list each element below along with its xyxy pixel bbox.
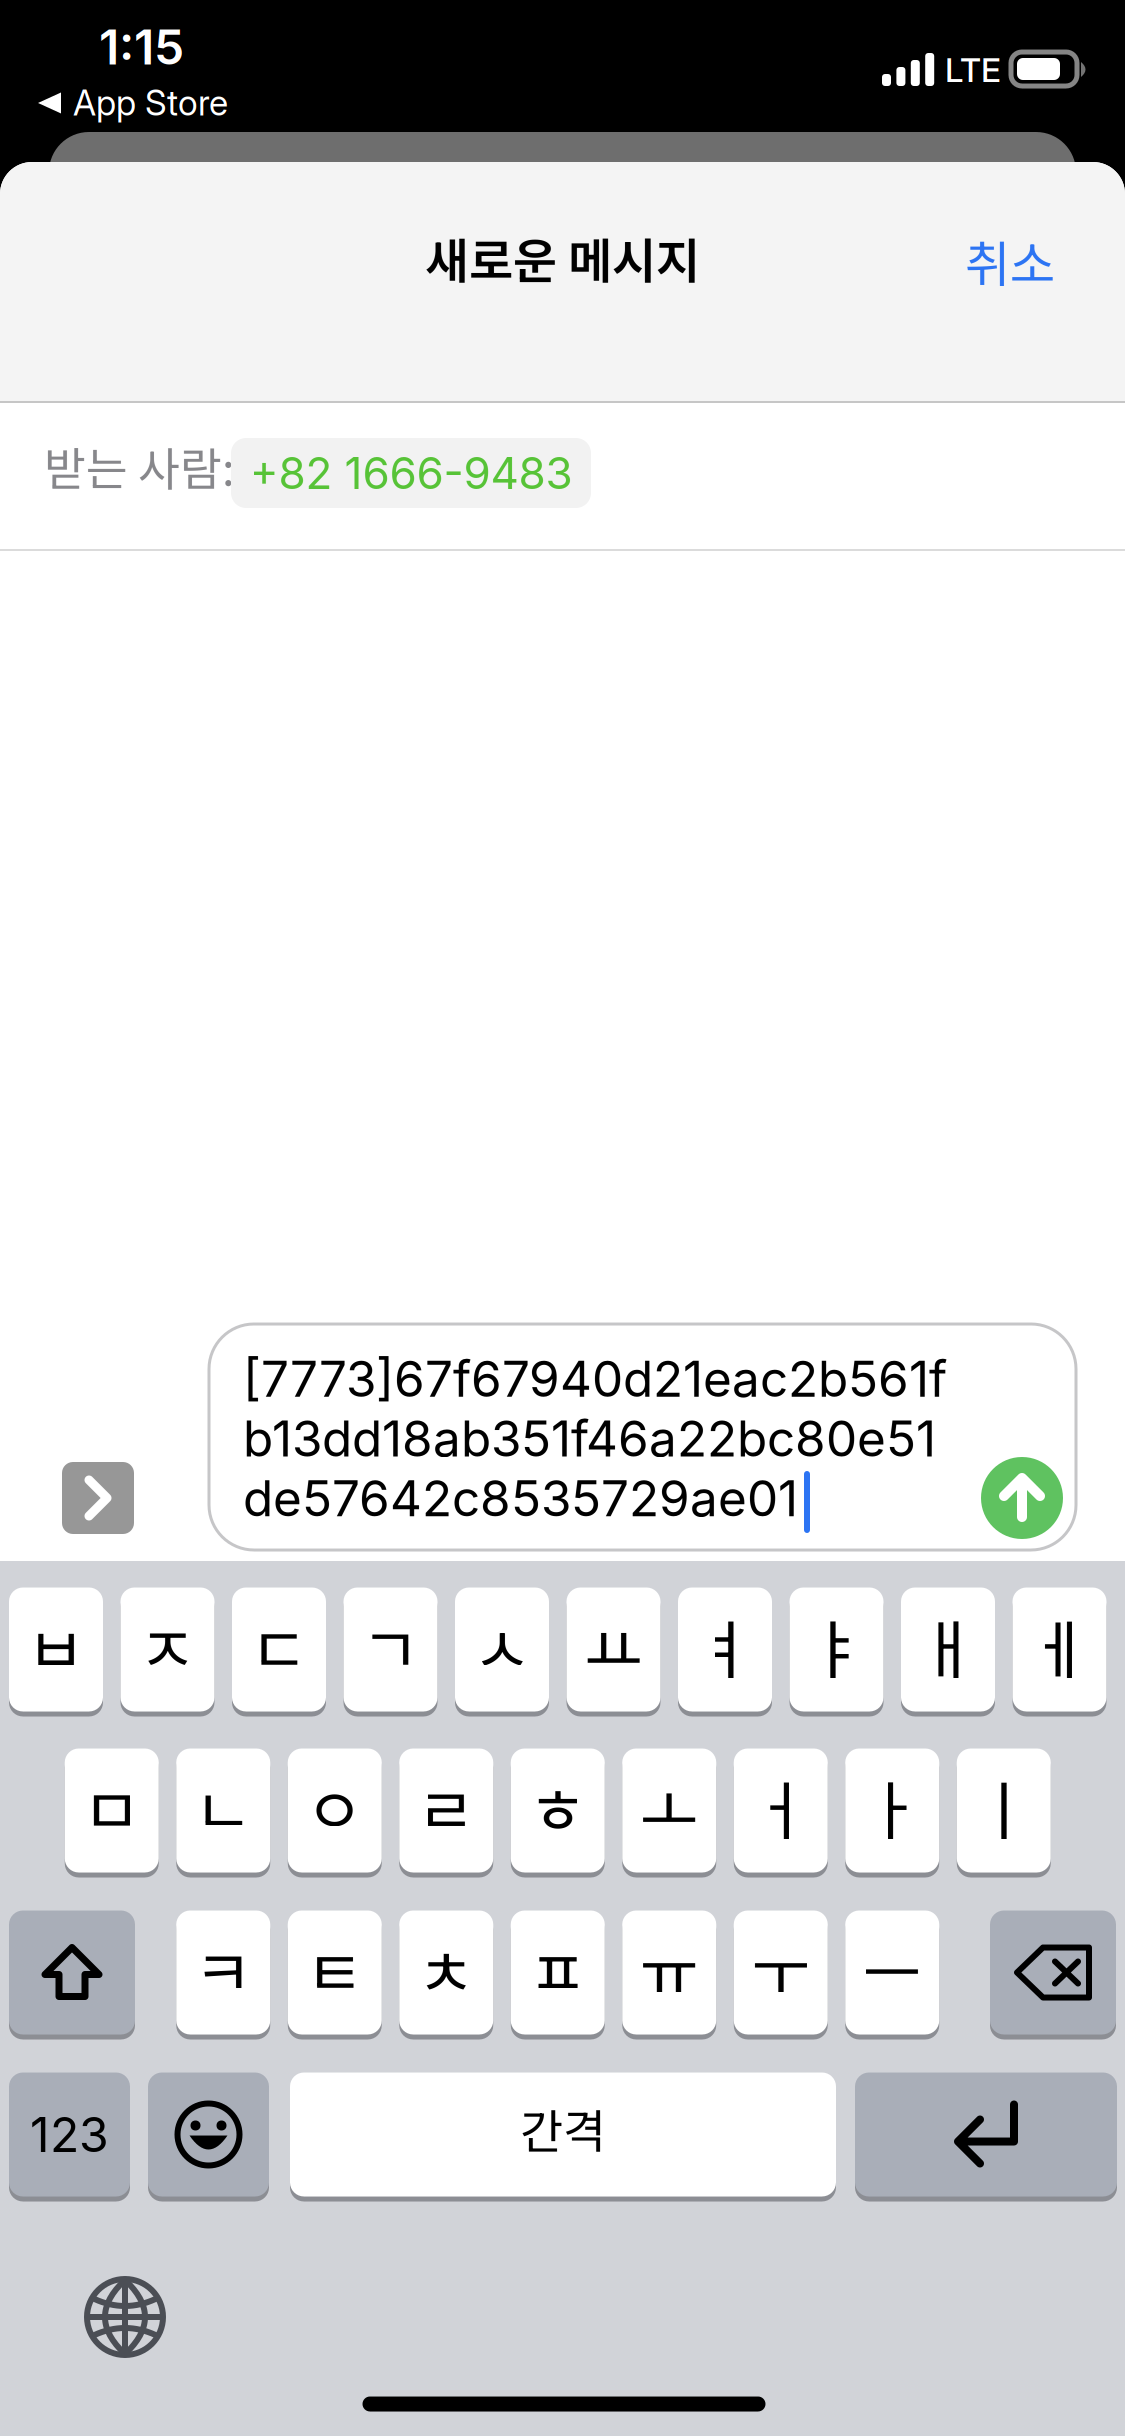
staticText: ㅏ (863, 1760, 922, 1853)
button[interactable]: ㅜ (734, 1908, 828, 2037)
button[interactable]: Delete (990, 1908, 1116, 2037)
button[interactable]: ㅔ (1012, 1585, 1106, 1714)
staticText: ㅗ (640, 1760, 699, 1853)
button[interactable]: ㅗ (622, 1746, 716, 1875)
staticText: ㅔ (1030, 1599, 1089, 1692)
button[interactable]: +82 1666-9483 (231, 438, 591, 508)
staticText: 1:15 (99, 18, 184, 76)
button[interactable]: ㅡ (845, 1908, 939, 2037)
button[interactable]: App drawer (62, 1462, 134, 1534)
staticText: ㅓ (751, 1760, 810, 1853)
button[interactable]: ㅑ (789, 1585, 883, 1714)
button[interactable]: ㅋ (176, 1908, 270, 2037)
staticText: [7773]67f67940d21eac2b561f b13dd18ab351f… (243, 1349, 947, 1528)
button[interactable]: App Store (38, 75, 298, 131)
staticText: 받는 사람: (44, 433, 235, 499)
staticText: ㅡ (863, 1922, 922, 2015)
staticText: ㄴ (194, 1760, 253, 1853)
staticText: ㅣ (974, 1760, 1033, 1853)
button[interactable]: ㅅ (455, 1585, 549, 1714)
staticText: ㅕ (695, 1599, 754, 1692)
staticText: App Store (73, 82, 228, 124)
staticText: LTE (945, 50, 1001, 90)
staticText: ㅅ (472, 1599, 531, 1692)
staticText: 123 (30, 2105, 109, 2164)
staticText: +82 1666-9483 (249, 446, 572, 500)
button[interactable]: ㅎ (511, 1746, 605, 1875)
button[interactable]: ㅏ (845, 1746, 939, 1875)
button[interactable]: ㅁ (65, 1746, 159, 1875)
staticText: ㅂ (26, 1599, 85, 1692)
button[interactable]: Shift (9, 1908, 135, 2037)
staticText: ㅍ (528, 1922, 587, 2015)
button[interactable]: ㅈ (120, 1585, 214, 1714)
staticText: ㅐ (918, 1599, 977, 1692)
staticText: 간격 (520, 2095, 606, 2162)
staticText: 취소 (965, 225, 1055, 296)
staticText: ㄹ (417, 1760, 476, 1853)
button[interactable]: ㄱ (343, 1585, 437, 1714)
button[interactable]: ㄷ (232, 1585, 326, 1714)
staticText: ㅁ (82, 1760, 141, 1853)
staticText: ㄱ (361, 1599, 420, 1692)
button[interactable]: ㅍ (511, 1908, 605, 2037)
button[interactable]: ㅠ (622, 1908, 716, 2037)
staticText: ㅛ (584, 1599, 643, 1692)
staticText: ㅋ (194, 1922, 253, 2015)
staticText: ㅈ (138, 1599, 197, 1692)
staticText: ㅇ (305, 1760, 364, 1853)
button[interactable]: Emoji (148, 2070, 269, 2199)
button[interactable]: ㅊ (399, 1908, 493, 2037)
staticText: ㅠ (640, 1922, 699, 2015)
button[interactable]: ㅇ (288, 1746, 382, 1875)
staticText: ㅌ (305, 1922, 364, 2015)
button[interactable]: ㄹ (399, 1746, 493, 1875)
button[interactable]: ㅐ (901, 1585, 995, 1714)
button[interactable]: 123 (9, 2070, 130, 2199)
button[interactable]: ㅣ (957, 1746, 1051, 1875)
staticText: ㅜ (751, 1922, 810, 2015)
staticText: ㅑ (807, 1599, 866, 1692)
button[interactable]: 간격 (290, 2070, 836, 2199)
staticText: ㄷ (249, 1599, 308, 1692)
button[interactable]: Switch keyboard (83, 2275, 167, 2359)
button[interactable]: Return (855, 2070, 1117, 2199)
button[interactable]: ㅓ (734, 1746, 828, 1875)
staticText: 새로운 메시지 (425, 223, 700, 292)
button[interactable]: ㅂ (9, 1585, 103, 1714)
staticText: ㅎ (528, 1760, 587, 1853)
button[interactable]: ㄴ (176, 1746, 270, 1875)
staticText: ㅊ (417, 1922, 476, 2015)
button[interactable]: ㅕ (678, 1585, 772, 1714)
button[interactable]: ㅛ (566, 1585, 660, 1714)
button[interactable]: ㅌ (288, 1908, 382, 2037)
button[interactable]: Send (981, 1457, 1063, 1539)
button[interactable]: 취소 (931, 197, 1089, 324)
